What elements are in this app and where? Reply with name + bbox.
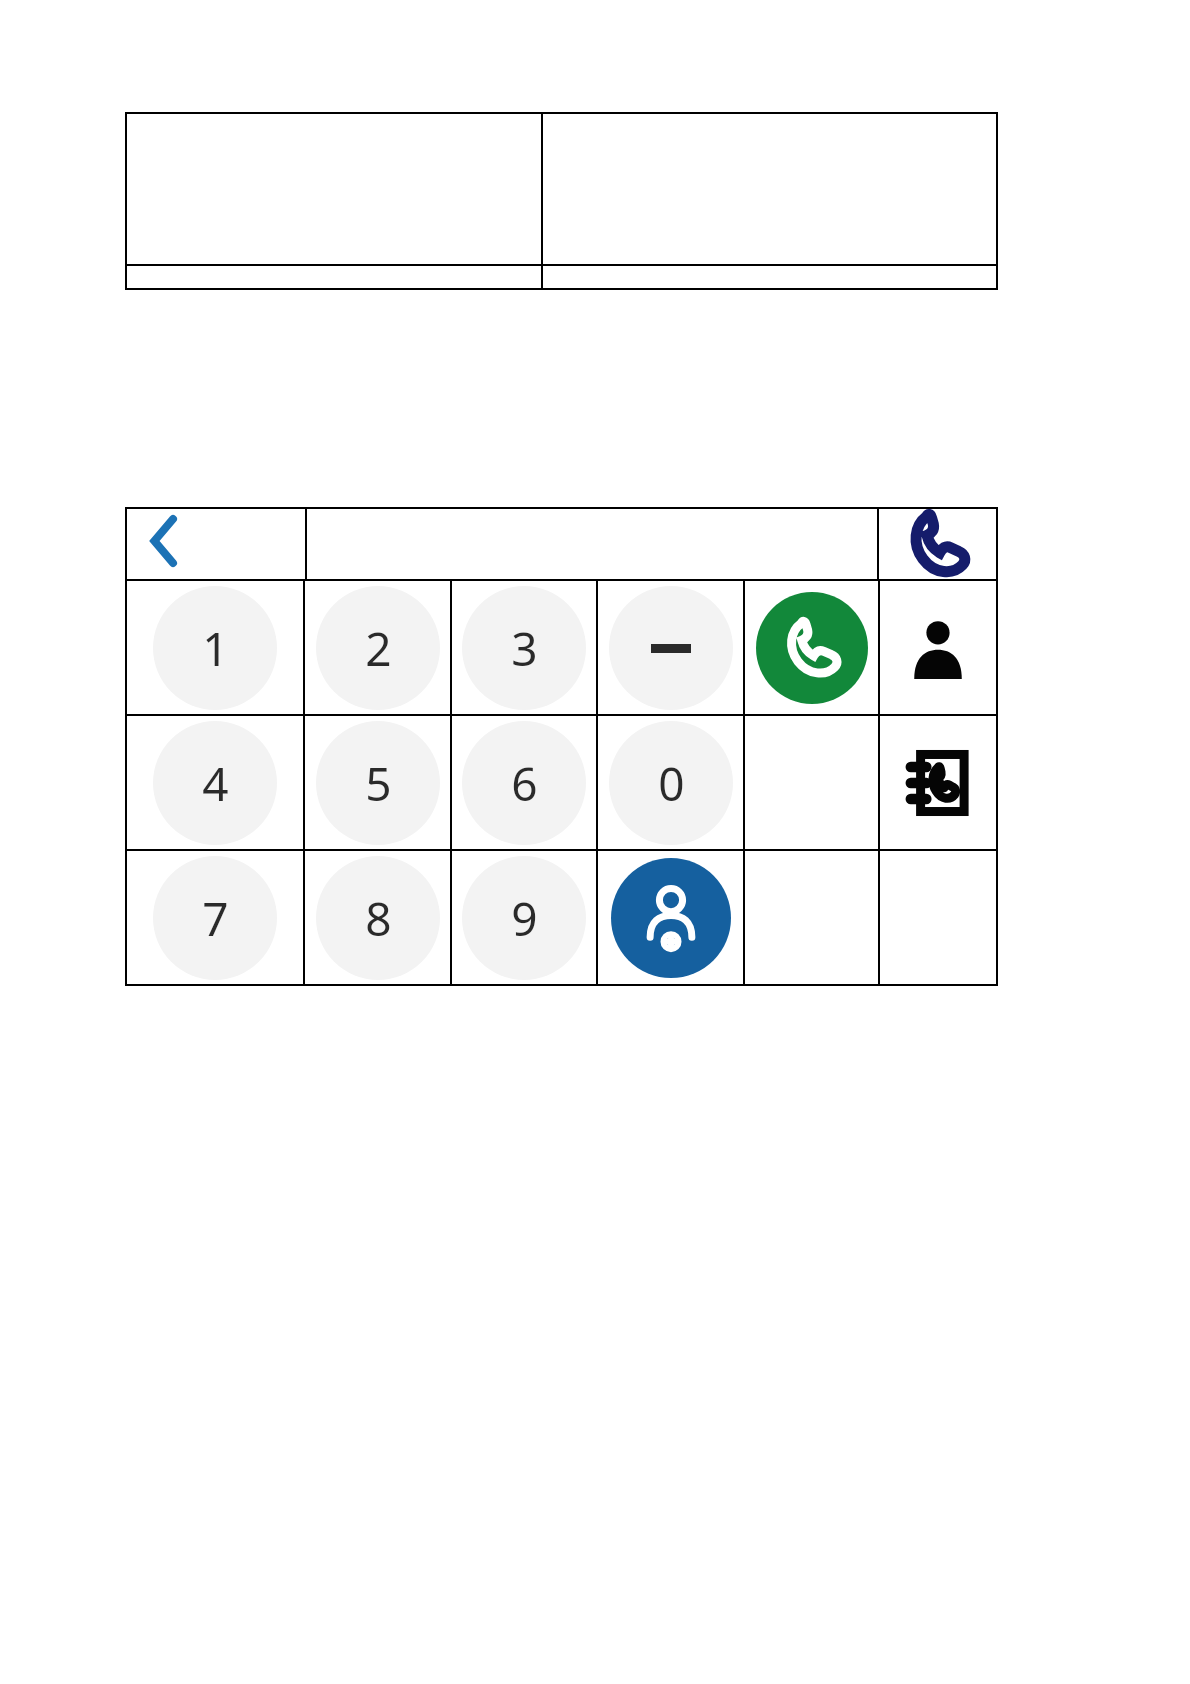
button[interactable]: 1	[127, 581, 303, 714]
staticText: 3	[511, 617, 538, 680]
staticText: 0	[658, 752, 685, 815]
staticText: 8	[365, 887, 392, 950]
button[interactable]: 0	[598, 716, 743, 849]
staticText: 7	[202, 887, 229, 950]
button[interactable]: Contacts	[880, 581, 996, 714]
button[interactable]: 6	[452, 716, 596, 849]
button[interactable]: 7	[127, 851, 303, 984]
button[interactable]: 8	[305, 851, 450, 984]
button[interactable]: Dash	[598, 581, 743, 714]
button[interactable]: Add contact	[598, 851, 743, 984]
button[interactable]: 4	[127, 716, 303, 849]
button[interactable]: Call	[745, 581, 878, 714]
staticText: 6	[511, 752, 538, 815]
button[interactable]: Address book	[880, 716, 996, 849]
button[interactable]: Call history	[879, 509, 996, 579]
staticText: 5	[365, 752, 392, 815]
button[interactable]: 3	[452, 581, 596, 714]
staticText: 1	[202, 617, 229, 680]
staticText: 2	[365, 617, 392, 680]
button[interactable]: 9	[452, 851, 596, 984]
button[interactable]: 5	[305, 716, 450, 849]
staticText: 9	[511, 887, 538, 950]
staticText: 4	[202, 752, 229, 815]
button[interactable]: Back	[127, 509, 305, 579]
button[interactable]: 2	[305, 581, 450, 714]
